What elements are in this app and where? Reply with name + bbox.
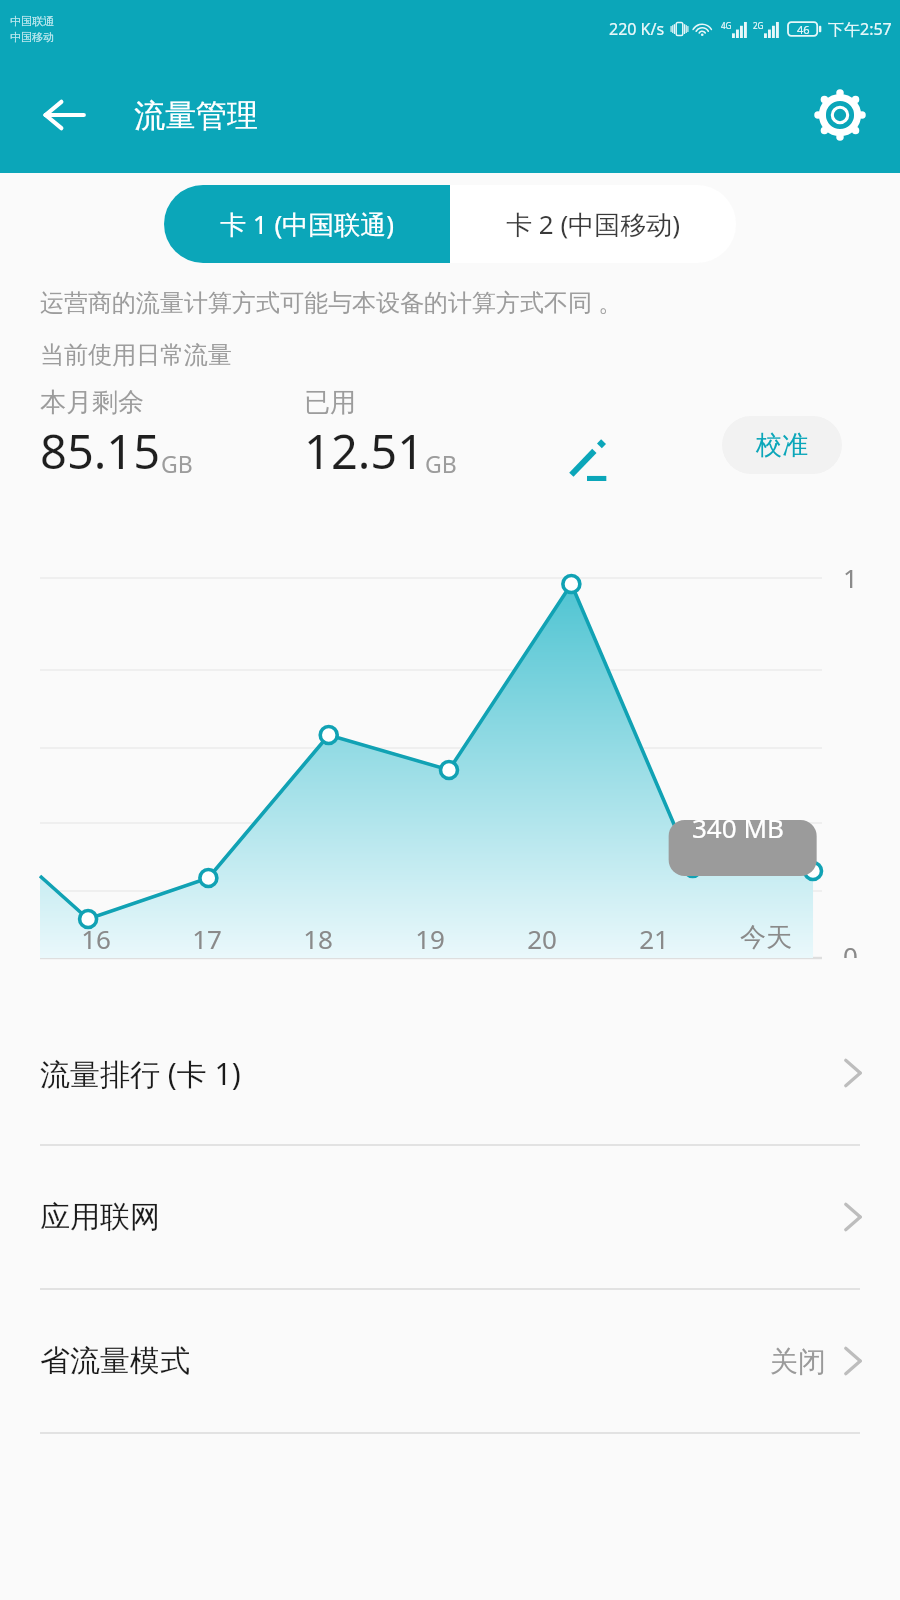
staticText: 已用	[304, 386, 356, 419]
staticText: 19	[415, 921, 445, 956]
staticText: 中国联通	[10, 14, 54, 28]
staticText: GB	[425, 448, 457, 479]
staticText: 17	[192, 921, 222, 956]
staticText: 20	[527, 921, 557, 956]
button[interactable]: Settings	[804, 79, 876, 151]
staticText: 46	[797, 22, 810, 37]
staticText: GB	[161, 448, 193, 479]
staticText: 下午2:57	[828, 18, 892, 40]
button[interactable]: 卡 1 (中国联通)	[164, 185, 450, 263]
staticText: 12.51	[304, 419, 425, 483]
staticText: 运营商的流量计算方式可能与本设备的计算方式不同 。	[40, 285, 623, 318]
staticText: 省流量模式	[40, 1342, 190, 1380]
staticText: 0	[843, 938, 858, 958]
button[interactable]: Edit	[556, 430, 618, 492]
staticText: 21	[639, 921, 669, 956]
staticText: 1	[843, 560, 858, 595]
button[interactable]: Back	[28, 79, 100, 151]
staticText: 220 K/s	[609, 18, 665, 40]
staticText: 卡 2 (中国移动)	[506, 206, 680, 242]
button[interactable]: 应用联网	[0, 1146, 900, 1288]
staticText: 流量排行 (卡 1)	[40, 1053, 241, 1094]
staticText: 卡 1 (中国联通)	[220, 206, 394, 242]
staticText: 应用联网	[40, 1198, 160, 1236]
staticText: 关闭	[770, 1344, 826, 1379]
staticText: 校准	[756, 429, 808, 462]
staticText: 2G	[753, 20, 764, 31]
button[interactable]: 省流量模式	[0, 1290, 900, 1432]
button[interactable]: 流量排行 (卡 1)	[0, 1002, 900, 1144]
staticText: 16	[81, 921, 111, 956]
staticText: 流量管理	[134, 96, 258, 135]
staticText: 今天	[740, 921, 792, 954]
button[interactable]: 卡 2 (中国移动)	[450, 185, 736, 263]
staticText: 当前使用日常流量	[40, 340, 232, 370]
staticText: 本月剩余	[40, 386, 144, 419]
staticText: 4G	[721, 20, 732, 31]
button[interactable]: 校准	[722, 416, 842, 474]
staticText: 中国移动	[10, 30, 54, 44]
staticText: 340 MB	[692, 810, 784, 845]
staticText: 85.15	[40, 419, 161, 483]
staticText: 18	[303, 921, 333, 956]
